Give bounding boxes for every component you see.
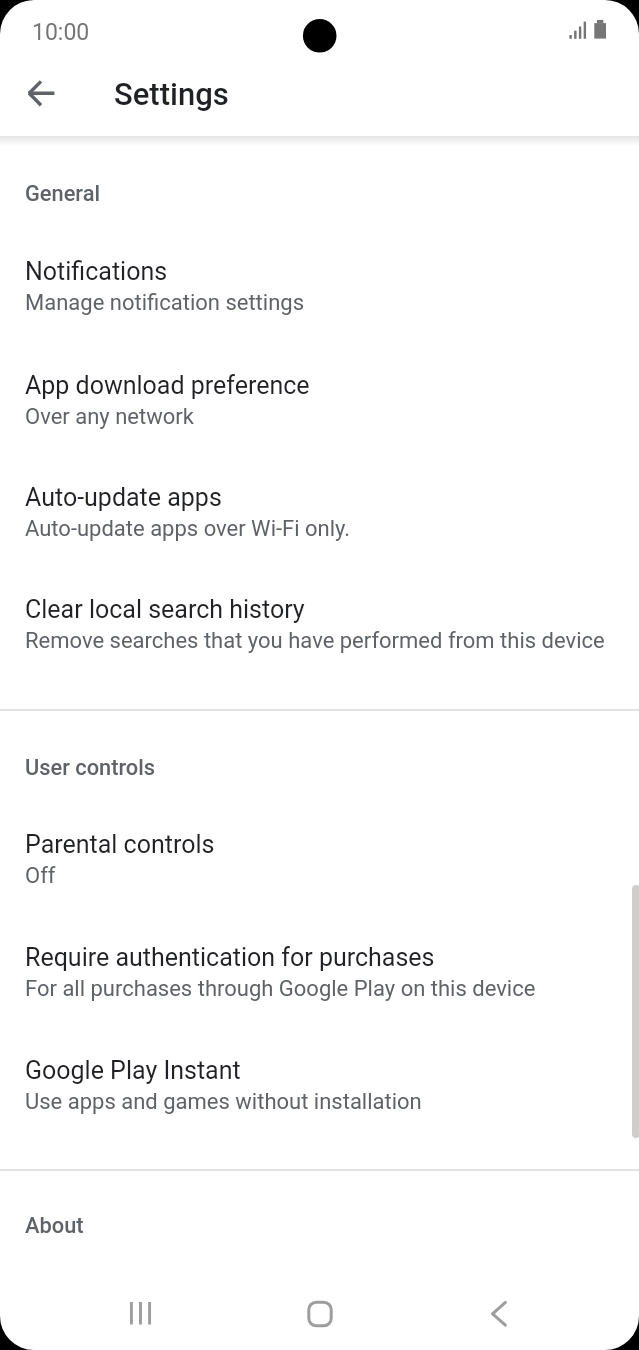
button[interactable]: Recent apps [106,1278,178,1350]
button[interactable]: Auto-update apps [0,483,639,573]
staticText: General [25,181,101,207]
button[interactable]: Parental controls [0,830,639,920]
staticText: Off [25,863,56,889]
staticText: Over any network [25,404,194,430]
staticText: Use apps and games without installation [25,1089,422,1115]
staticText: App download preference [25,371,310,400]
button[interactable]: Google Play Instant [0,1056,639,1146]
staticText: Require authentication for purchases [25,943,435,972]
button[interactable]: Notifications [0,257,639,347]
staticText: Auto-update apps [25,483,222,512]
staticText: User controls [25,755,156,781]
staticText: Auto-update apps over Wi-Fi only. [25,516,351,542]
staticText: Google Play Instant [25,1056,241,1085]
button[interactable]: Back [14,66,72,124]
staticText: For all purchases through Google Play on… [25,976,536,1002]
staticText: Notifications [25,257,168,286]
button[interactable]: App download preference [0,371,639,461]
staticText: Clear local search history [25,595,305,624]
staticText: Manage notification settings [25,290,305,316]
button[interactable]: Clear local search history [0,595,639,685]
staticText: Remove searches that you have performed … [25,628,605,654]
staticText: About [25,1213,84,1239]
button[interactable]: Back [463,1278,535,1350]
button[interactable]: Require authentication for purchases [0,943,639,1033]
staticText: Parental controls [25,830,215,859]
staticText: 10:00 [32,19,90,46]
staticText: Settings [114,76,229,112]
button[interactable]: Home [284,1278,356,1350]
